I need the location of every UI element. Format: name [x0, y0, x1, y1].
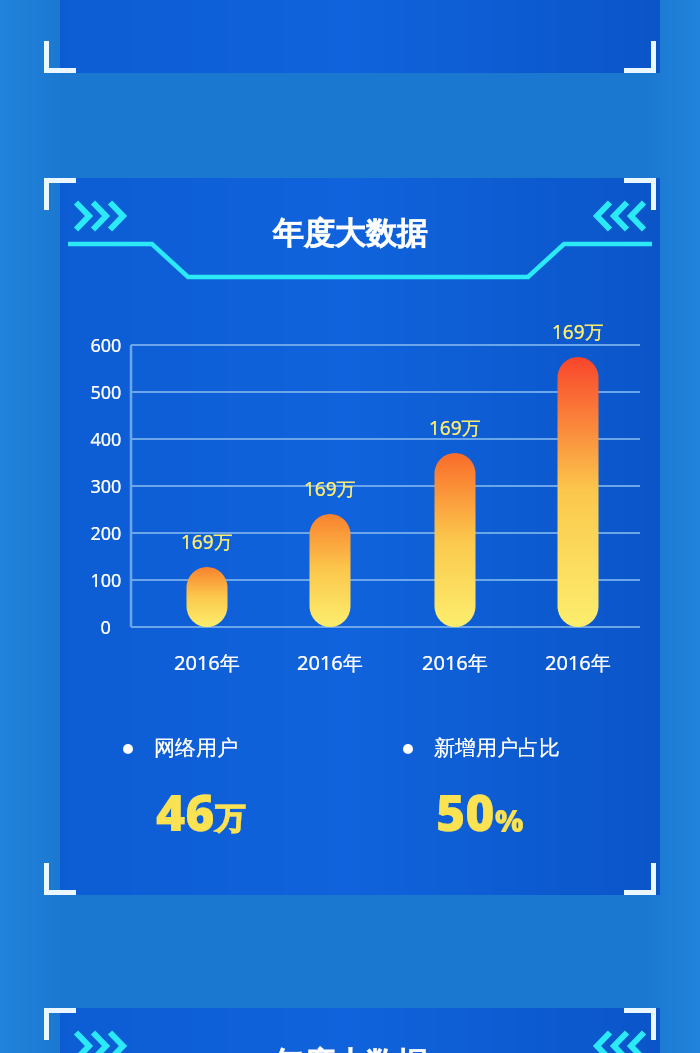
button[interactable]: Annual big data report	[0, 0, 700, 1053]
